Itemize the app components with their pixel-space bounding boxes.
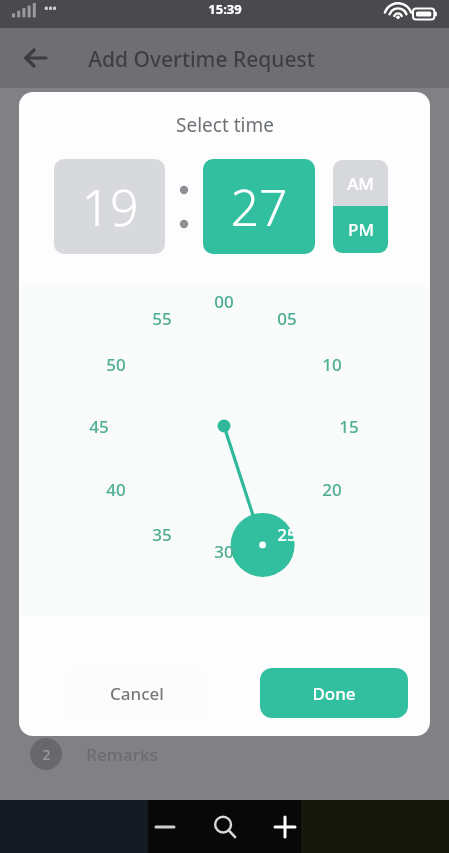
staticText: 10 <box>322 353 342 376</box>
button[interactable]: 25 <box>265 521 309 547</box>
button[interactable]: Done <box>260 668 408 718</box>
button[interactable]: 00 <box>202 288 246 314</box>
button[interactable]: Zoom in <box>263 805 307 849</box>
staticText: 2 <box>42 745 51 764</box>
staticText: Add Overtime Request <box>88 45 315 74</box>
staticText: Select time <box>176 112 274 138</box>
button[interactable]: 50 <box>94 351 138 377</box>
button[interactable]: AM <box>333 160 388 206</box>
staticText: 30 <box>214 540 234 563</box>
staticText: 40 <box>106 478 126 501</box>
button[interactable]: 45 <box>77 413 121 439</box>
button[interactable]: 35 <box>140 521 184 547</box>
button[interactable]: 05 <box>265 305 309 331</box>
button[interactable]: Search <box>203 805 247 849</box>
button[interactable]: 20 <box>310 476 354 502</box>
staticText: Done <box>312 682 356 705</box>
button[interactable]: 55 <box>140 305 184 331</box>
button[interactable]: 30 <box>202 538 246 564</box>
button[interactable]: 40 <box>94 476 138 502</box>
staticText: ••• <box>44 0 57 15</box>
button[interactable]: 15 <box>327 413 371 439</box>
staticText: 55 <box>152 307 172 330</box>
staticText: 45 <box>89 415 109 438</box>
staticText: Cancel <box>110 682 164 705</box>
staticText: 19 <box>81 173 139 241</box>
staticText: AM <box>347 172 374 195</box>
button[interactable]: 27 <box>203 159 315 254</box>
staticText: 15:39 <box>208 0 242 18</box>
button[interactable]: Cancel <box>64 668 209 718</box>
button[interactable]: 10 <box>310 351 354 377</box>
staticText: 05 <box>277 307 297 330</box>
staticText: 35 <box>152 523 172 546</box>
staticText: 50 <box>106 353 126 376</box>
staticText: 20 <box>322 478 342 501</box>
staticText: 15 <box>339 415 359 438</box>
staticText: 27 <box>230 173 288 241</box>
button[interactable]: 19 <box>54 159 165 254</box>
staticText: 25 <box>277 523 297 546</box>
staticText: Remarks <box>86 743 158 766</box>
button[interactable]: PM <box>333 206 388 253</box>
staticText: PM <box>348 218 374 241</box>
button[interactable]: Zoom out <box>143 805 187 849</box>
button[interactable]: Back <box>12 34 60 82</box>
staticText: 00 <box>214 290 234 313</box>
